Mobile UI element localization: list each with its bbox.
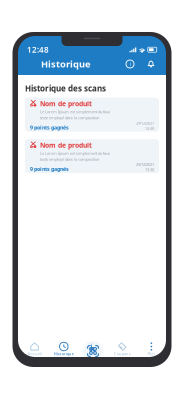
staticText: Le Lorem Ipsum est simplement du faux bbox=[40, 109, 110, 114]
staticText: Nom de produit bbox=[40, 99, 92, 108]
staticText: Coupons bbox=[114, 351, 131, 356]
staticText: 29/12/2021 bbox=[136, 120, 154, 126]
button[interactable]: Accueil bbox=[20, 341, 49, 357]
staticText: 9 points gagnés bbox=[30, 124, 69, 131]
staticText: Historique bbox=[54, 351, 74, 356]
button[interactable]: Scanner un code bbox=[78, 341, 108, 357]
button[interactable]: Plus bbox=[137, 341, 166, 357]
staticText: texte employé dans la composition bbox=[40, 156, 99, 162]
button[interactable]: Nom de produit bbox=[25, 98, 159, 132]
staticText: 13:30 bbox=[145, 167, 154, 172]
button[interactable]: Coupons bbox=[108, 341, 137, 357]
staticText: 13:30 bbox=[145, 126, 154, 131]
staticText: texte employé dans la composition bbox=[40, 115, 99, 120]
staticText: Nom de produit bbox=[40, 141, 92, 150]
staticText: Historique bbox=[41, 58, 91, 70]
button[interactable]: Information bbox=[123, 57, 137, 71]
staticText: Le Lorem Ipsum est simplement du faux bbox=[40, 150, 110, 156]
staticText: 12:48 bbox=[27, 44, 49, 55]
staticText: 9 points gagnés bbox=[30, 165, 69, 172]
staticText: 29/12/2021 bbox=[136, 162, 154, 167]
staticText: Historique des scans bbox=[25, 83, 106, 94]
staticText: Plus bbox=[147, 351, 155, 356]
button[interactable]: Nom de produit bbox=[25, 139, 159, 173]
button[interactable]: Notifications bbox=[144, 57, 158, 71]
staticText: Accueil bbox=[28, 351, 42, 356]
button[interactable]: Historique bbox=[49, 341, 78, 357]
